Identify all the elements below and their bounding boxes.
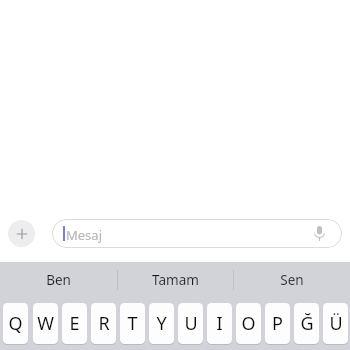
button[interactable]: Ben — [0, 262, 117, 298]
button[interactable]: E — [62, 303, 87, 349]
button[interactable]: Ü — [323, 303, 348, 349]
staticText: P — [272, 311, 283, 336]
staticText: Q — [8, 311, 23, 336]
button[interactable]: Q — [3, 303, 28, 349]
button[interactable]: Mesaj — [52, 219, 342, 248]
staticText: O — [241, 311, 256, 336]
button[interactable]: Y — [149, 303, 174, 349]
staticText: I — [216, 311, 223, 336]
button[interactable]: Tamam — [117, 262, 233, 298]
staticText: Ben — [46, 271, 71, 289]
staticText: T — [127, 311, 138, 336]
staticText: R — [98, 311, 110, 336]
staticText: Ğ — [300, 311, 314, 336]
staticText: Mesaj — [66, 226, 102, 244]
staticText: U — [184, 311, 198, 336]
button[interactable]: O — [236, 303, 261, 349]
button[interactable]: U — [178, 303, 203, 349]
button[interactable]: I — [207, 303, 232, 349]
staticText: Tamam — [152, 271, 199, 289]
staticText: Ü — [329, 311, 343, 336]
button[interactable]: W — [33, 303, 58, 349]
button[interactable]: R — [91, 303, 116, 349]
staticText: W — [37, 311, 54, 336]
staticText: E — [69, 311, 80, 336]
button[interactable]: Ğ — [294, 303, 319, 349]
button[interactable]: P — [265, 303, 290, 349]
button[interactable]: Dictate — [307, 219, 332, 248]
button[interactable]: Sen — [233, 262, 350, 298]
button[interactable]: T — [120, 303, 145, 349]
staticText: Y — [156, 311, 167, 336]
button[interactable]: Add attachment — [8, 220, 35, 247]
staticText: Sen — [280, 271, 304, 289]
